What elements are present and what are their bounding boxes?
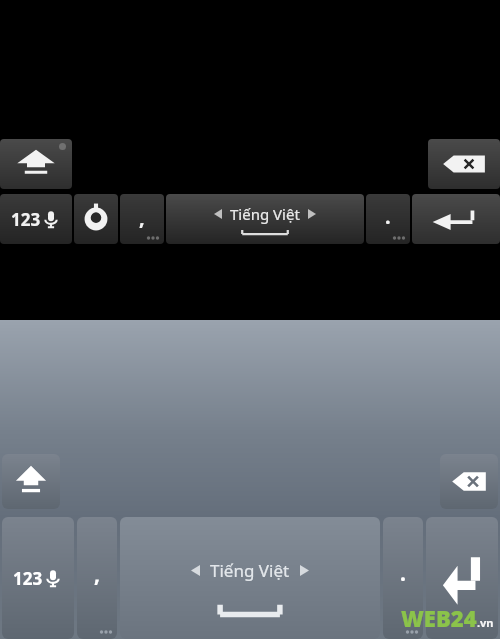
staticText: . (385, 203, 391, 230)
staticText: , (94, 560, 100, 589)
staticText: 123 (11, 208, 41, 231)
button[interactable]: Space, Tiếng Việt (120, 517, 380, 639)
staticText: .vn (477, 615, 494, 630)
button[interactable]: , (77, 517, 117, 639)
staticText: 123 (13, 567, 43, 590)
button[interactable]: Backspace (428, 139, 500, 189)
button[interactable]: Enter (426, 517, 498, 639)
button[interactable]: , (120, 194, 164, 244)
button[interactable]: 123 (0, 194, 72, 244)
staticText: . (400, 559, 406, 588)
button[interactable]: Shift (2, 454, 60, 509)
staticText: WEB24 (401, 603, 477, 633)
staticText: Tiếng Việt (210, 559, 290, 582)
button[interactable]: Backspace (440, 454, 498, 509)
button[interactable]: Space, Tiếng Việt (166, 194, 364, 244)
button[interactable]: . (366, 194, 410, 244)
button[interactable]: Settings (74, 194, 118, 244)
button[interactable]: 123 (2, 517, 74, 639)
staticText: , (139, 204, 145, 231)
staticText: Tiếng Việt (230, 204, 300, 224)
button[interactable]: Shift (0, 139, 72, 189)
button[interactable]: Enter (412, 194, 500, 244)
button[interactable]: . (383, 517, 423, 639)
